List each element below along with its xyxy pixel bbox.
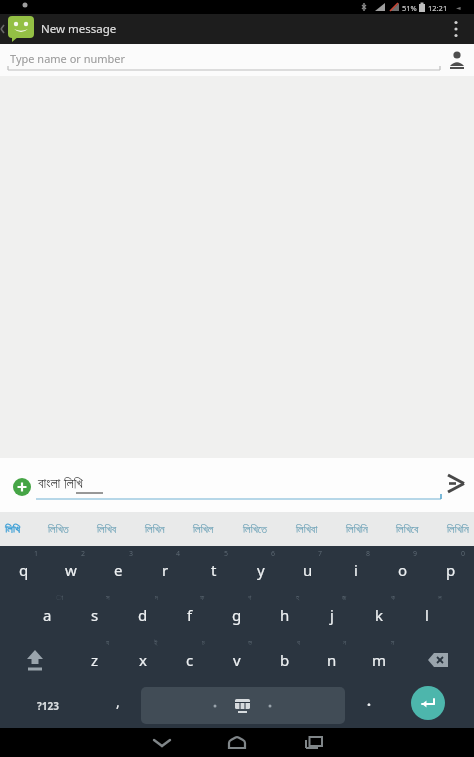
staticText: v xyxy=(233,650,241,670)
staticText: 1 xyxy=(34,549,39,559)
staticText: f xyxy=(187,605,193,625)
button[interactable]: g xyxy=(213,593,260,637)
staticText: লিখি xyxy=(5,524,20,535)
button[interactable]: লিখিবা xyxy=(296,512,318,546)
button[interactable]: s xyxy=(71,593,118,637)
button[interactable]: লিখিবে xyxy=(396,512,419,546)
staticText: লিখিত xyxy=(48,524,69,535)
button[interactable]: লিখিব xyxy=(97,512,117,546)
staticText: ক xyxy=(391,594,395,601)
button[interactable]: লিখিন xyxy=(145,512,165,546)
staticText: লিখিন xyxy=(145,524,165,535)
staticText: d xyxy=(138,605,148,625)
staticText: ?123 xyxy=(37,699,59,713)
staticText: New message xyxy=(41,21,117,37)
staticText: য xyxy=(106,639,110,646)
button[interactable]: f xyxy=(166,593,213,637)
staticText: ম xyxy=(391,639,395,646)
button[interactable]: q xyxy=(0,548,47,592)
button[interactable]: , xyxy=(95,683,140,728)
staticText: e xyxy=(114,560,123,580)
staticText: ফ xyxy=(200,594,205,601)
staticText: u xyxy=(303,560,313,580)
staticText: q xyxy=(19,560,29,580)
button[interactable]: l xyxy=(403,593,450,637)
staticText: , xyxy=(116,692,120,711)
button[interactable] xyxy=(403,638,474,682)
button[interactable]: h xyxy=(261,593,308,637)
staticText: . xyxy=(367,691,371,710)
button[interactable]: লিখিনি xyxy=(447,512,469,546)
button[interactable]: d xyxy=(119,593,166,637)
button[interactable]: ?123 xyxy=(0,683,95,728)
button[interactable]: w xyxy=(47,548,94,592)
button[interactable]: a xyxy=(24,593,71,637)
staticText: j xyxy=(330,605,334,625)
staticText: লিখিনি xyxy=(346,524,368,535)
staticText: l xyxy=(425,605,429,625)
staticText: 8 xyxy=(366,549,371,559)
button[interactable]: r xyxy=(142,548,189,592)
button[interactable]: v xyxy=(213,638,260,682)
staticText: n xyxy=(327,650,337,670)
button[interactable] xyxy=(212,728,262,757)
staticText: ◄ xyxy=(456,4,461,11)
staticText: 5 xyxy=(224,549,229,559)
staticText: h xyxy=(280,605,290,625)
button[interactable]: c xyxy=(166,638,213,682)
staticText: x xyxy=(139,650,147,670)
button[interactable]: লিখিল xyxy=(193,512,214,546)
button[interactable]: লিখিত xyxy=(48,512,69,546)
button[interactable]: p xyxy=(427,548,474,592)
button[interactable]: j xyxy=(308,593,355,637)
button[interactable]: লিখিনি xyxy=(346,512,368,546)
staticText: i xyxy=(354,560,358,580)
button[interactable] xyxy=(8,16,34,42)
button[interactable] xyxy=(438,14,474,44)
staticText: লিখিনি xyxy=(447,524,469,535)
staticText: 9 xyxy=(413,549,418,559)
staticText: ল xyxy=(438,594,442,601)
staticText: a xyxy=(43,605,52,625)
button[interactable] xyxy=(0,638,71,682)
button[interactable]: o xyxy=(379,548,426,592)
staticText: o xyxy=(398,560,408,580)
button[interactable]: লিখিতে xyxy=(243,512,268,546)
staticText: া xyxy=(56,594,63,601)
button[interactable]: n xyxy=(308,638,355,682)
button[interactable] xyxy=(141,687,345,724)
staticText: s xyxy=(91,605,99,625)
button[interactable] xyxy=(411,686,445,720)
button[interactable] xyxy=(440,458,474,512)
button[interactable]: u xyxy=(284,548,331,592)
staticText: ই xyxy=(154,639,158,646)
staticText: 2 xyxy=(81,549,86,559)
button[interactable]: e xyxy=(95,548,142,592)
staticText: g xyxy=(232,605,242,625)
button[interactable]: i xyxy=(332,548,379,592)
button[interactable]: . xyxy=(346,683,391,728)
staticText: জ xyxy=(342,594,347,601)
staticText: t xyxy=(211,560,217,580)
staticText: 51% xyxy=(402,3,417,13)
button[interactable]: লিখি xyxy=(5,512,20,546)
button[interactable] xyxy=(137,728,187,757)
staticText: k xyxy=(375,605,384,625)
button[interactable]: k xyxy=(356,593,403,637)
button[interactable]: z xyxy=(71,638,118,682)
staticText: m xyxy=(372,650,387,670)
button[interactable]: b xyxy=(261,638,308,682)
button[interactable]: x xyxy=(119,638,166,682)
staticText: 12:21 xyxy=(428,3,448,13)
button[interactable]: Type name or number xyxy=(0,44,474,76)
staticText: Type name or number xyxy=(10,51,126,66)
staticText: r xyxy=(162,560,169,580)
staticText: z xyxy=(91,650,99,670)
button[interactable]: t xyxy=(190,548,237,592)
button[interactable]: y xyxy=(237,548,284,592)
button[interactable] xyxy=(13,478,31,496)
staticText: লিখিব xyxy=(97,524,117,535)
staticText: গ xyxy=(248,594,252,601)
button[interactable] xyxy=(289,728,339,757)
button[interactable]: m xyxy=(356,638,403,682)
